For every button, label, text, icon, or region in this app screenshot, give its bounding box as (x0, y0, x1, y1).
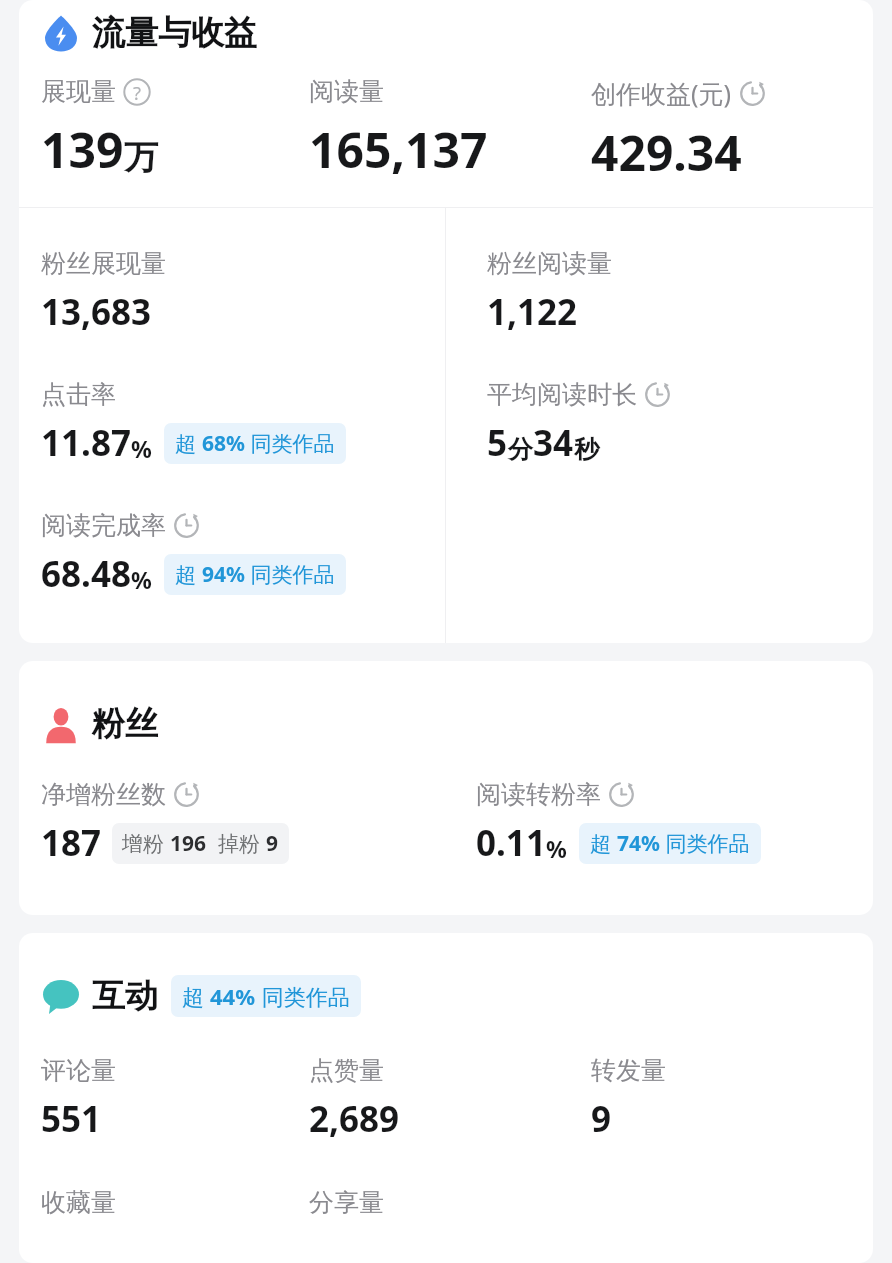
staticText: % (546, 833, 567, 864)
staticText: 同类作品 (245, 560, 335, 589)
staticText: 165,137 (309, 117, 488, 182)
staticText: 互动 (92, 975, 158, 1017)
staticText: 34 (533, 419, 574, 467)
staticText: 196 (170, 829, 207, 858)
staticText: 同类作品 (660, 829, 750, 858)
staticText: 净增粉丝数 (41, 779, 166, 810)
staticText: 0.11 (476, 819, 546, 867)
staticText: 同类作品 (256, 981, 350, 1011)
staticText: 创作收益(元) (591, 76, 732, 110)
staticText: 粉丝 (92, 703, 158, 745)
button[interactable]: 粉丝 (19, 661, 873, 751)
button[interactable]: 流量与收益 (19, 0, 873, 60)
staticText: 68.48 (41, 550, 131, 598)
staticText: % (131, 433, 152, 464)
staticText: 超 (182, 981, 210, 1011)
staticText: 粉丝展现量 (41, 248, 166, 279)
staticText: 551 (41, 1095, 102, 1143)
staticText: 掉粉 (207, 829, 266, 858)
staticText: 11.87 (41, 419, 131, 467)
staticText: 点赞量 (309, 1055, 384, 1086)
staticText: ? (133, 80, 142, 105)
staticText: 2,689 (309, 1095, 400, 1143)
staticText: 阅读完成率 (41, 510, 166, 541)
staticText: 429.34 (591, 120, 742, 185)
staticText: 转发量 (591, 1055, 666, 1086)
staticText: 1,122 (487, 288, 578, 336)
staticText: 超 (175, 560, 202, 589)
button[interactable]: 互动 (19, 933, 873, 1023)
staticText: 同类作品 (245, 429, 335, 458)
staticText: 阅读转粉率 (476, 779, 601, 810)
staticText: 44% (210, 981, 256, 1011)
staticText: 粉丝阅读量 (487, 248, 612, 279)
staticText: % (131, 564, 152, 595)
staticText: 超 (590, 829, 617, 858)
staticText: 点击率 (41, 379, 116, 410)
staticText: 分享量 (309, 1187, 384, 1218)
staticText: 187 (41, 819, 102, 867)
staticText: 68% (202, 429, 245, 458)
staticText: 分 (508, 434, 533, 465)
staticText: 5 (487, 419, 508, 467)
staticText: 增粉 (122, 829, 170, 858)
staticText: 74% (617, 829, 660, 858)
staticText: 万 (124, 136, 158, 179)
staticText: 展现量 (41, 76, 116, 107)
staticText: 139 (41, 117, 124, 182)
staticText: 收藏量 (41, 1187, 116, 1218)
staticText: 94% (202, 560, 245, 589)
staticText: 9 (591, 1095, 612, 1143)
staticText: 13,683 (41, 288, 152, 336)
staticText: 9 (266, 829, 279, 858)
button[interactable]: 说明 (123, 78, 151, 106)
staticText: 流量与收益 (92, 12, 257, 54)
staticText: 秒 (574, 434, 599, 465)
staticText: 平均阅读时长 (487, 379, 637, 410)
staticText: 超 (175, 429, 202, 458)
staticText: 评论量 (41, 1055, 116, 1086)
staticText: 阅读量 (309, 76, 384, 107)
